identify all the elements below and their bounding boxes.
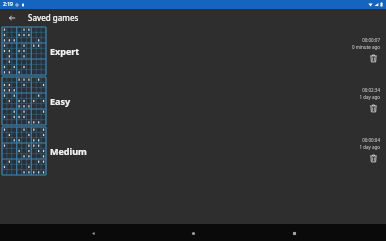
button[interactable]: Medium (0, 126, 386, 176)
staticText: Saved games (28, 12, 79, 23)
staticText: 00:02:34 (362, 87, 380, 93)
staticText: Expert (50, 45, 80, 57)
staticText: 1 day ago (359, 144, 380, 150)
staticText: Medium (50, 145, 87, 157)
button[interactable]: Expert (0, 26, 386, 76)
button[interactable]: Easy (0, 76, 386, 126)
staticText: Easy (50, 95, 71, 107)
button[interactable]: Back (85, 225, 101, 241)
staticText: 00:00:07 (362, 37, 380, 43)
button[interactable]: Back (5, 11, 19, 25)
button[interactable]: Home (185, 225, 201, 241)
staticText: 1 day ago (359, 94, 380, 100)
button[interactable]: Delete saved game (367, 52, 380, 65)
staticText: 2:19 (3, 1, 13, 8)
staticText: 00:00:04 (362, 137, 380, 143)
button[interactable]: Recent apps (286, 225, 302, 241)
button[interactable]: Delete saved game (367, 102, 380, 115)
button[interactable]: Delete saved game (367, 152, 380, 165)
staticText: 0 minute ago (351, 44, 380, 50)
